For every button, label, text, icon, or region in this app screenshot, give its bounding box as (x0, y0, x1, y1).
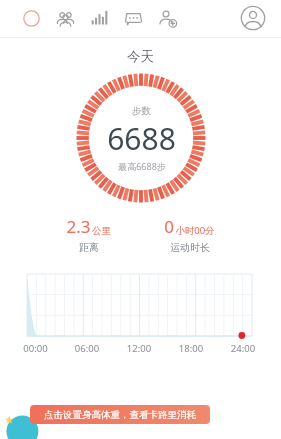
staticText: 距离 (79, 241, 99, 254)
button[interactable]: Statistics (82, 1, 116, 35)
button[interactable]: 0 (156, 215, 223, 254)
staticText: 6688 (107, 118, 176, 159)
button[interactable]: Friends (48, 1, 82, 35)
staticText: 2.3 (66, 215, 91, 238)
button[interactable]: 点击设置身高体重，查看卡路里消耗 (30, 405, 210, 424)
staticText: 点击设置身高体重，查看卡路里消耗 (44, 409, 196, 421)
button[interactable]: Profile (235, 0, 271, 36)
staticText: 06:00 (61, 342, 113, 355)
staticText: 小时00分 (175, 224, 215, 237)
staticText: 运动时长 (170, 241, 210, 254)
button[interactable]: Messages (116, 1, 150, 35)
staticText: 今天 (0, 48, 281, 65)
staticText: 最高6688步 (118, 160, 166, 172)
staticText: 步数 (132, 105, 151, 117)
button[interactable]: Activity (14, 1, 48, 35)
button[interactable]: 2.3 (58, 215, 119, 254)
staticText: 24:00 (217, 342, 269, 355)
button[interactable]: Steps today 6688 (76, 73, 206, 203)
button[interactable]: Add friend (150, 1, 184, 35)
staticText: 18:00 (165, 342, 217, 355)
staticText: 公里 (92, 225, 111, 237)
staticText: 12:00 (113, 342, 165, 355)
staticText: 0 (164, 215, 174, 238)
staticText: 00:00 (10, 342, 61, 355)
